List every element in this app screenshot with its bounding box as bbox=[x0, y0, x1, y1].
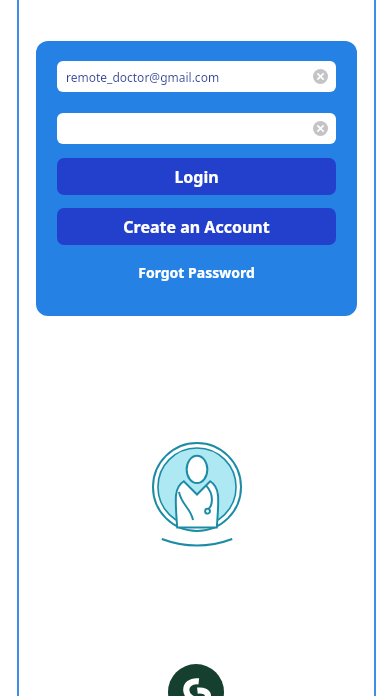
button[interactable]: Create an Account bbox=[57, 208, 336, 245]
button[interactable]: Clear text bbox=[313, 121, 328, 136]
staticText: remote_doctor@gmail.com bbox=[66, 69, 220, 85]
staticText: Forgot Password bbox=[138, 263, 255, 282]
staticText: Login bbox=[174, 166, 219, 188]
other: Doctor bbox=[152, 442, 242, 552]
staticText: Create an Account bbox=[123, 216, 270, 238]
button[interactable]: Clear text bbox=[57, 113, 336, 144]
button[interactable]: Login bbox=[57, 158, 336, 195]
other: App logo bbox=[168, 664, 224, 696]
button[interactable]: remote_doctor@gmail.com bbox=[57, 61, 336, 92]
button[interactable]: Clear text bbox=[313, 69, 328, 84]
button[interactable]: Forgot Password bbox=[57, 259, 336, 285]
